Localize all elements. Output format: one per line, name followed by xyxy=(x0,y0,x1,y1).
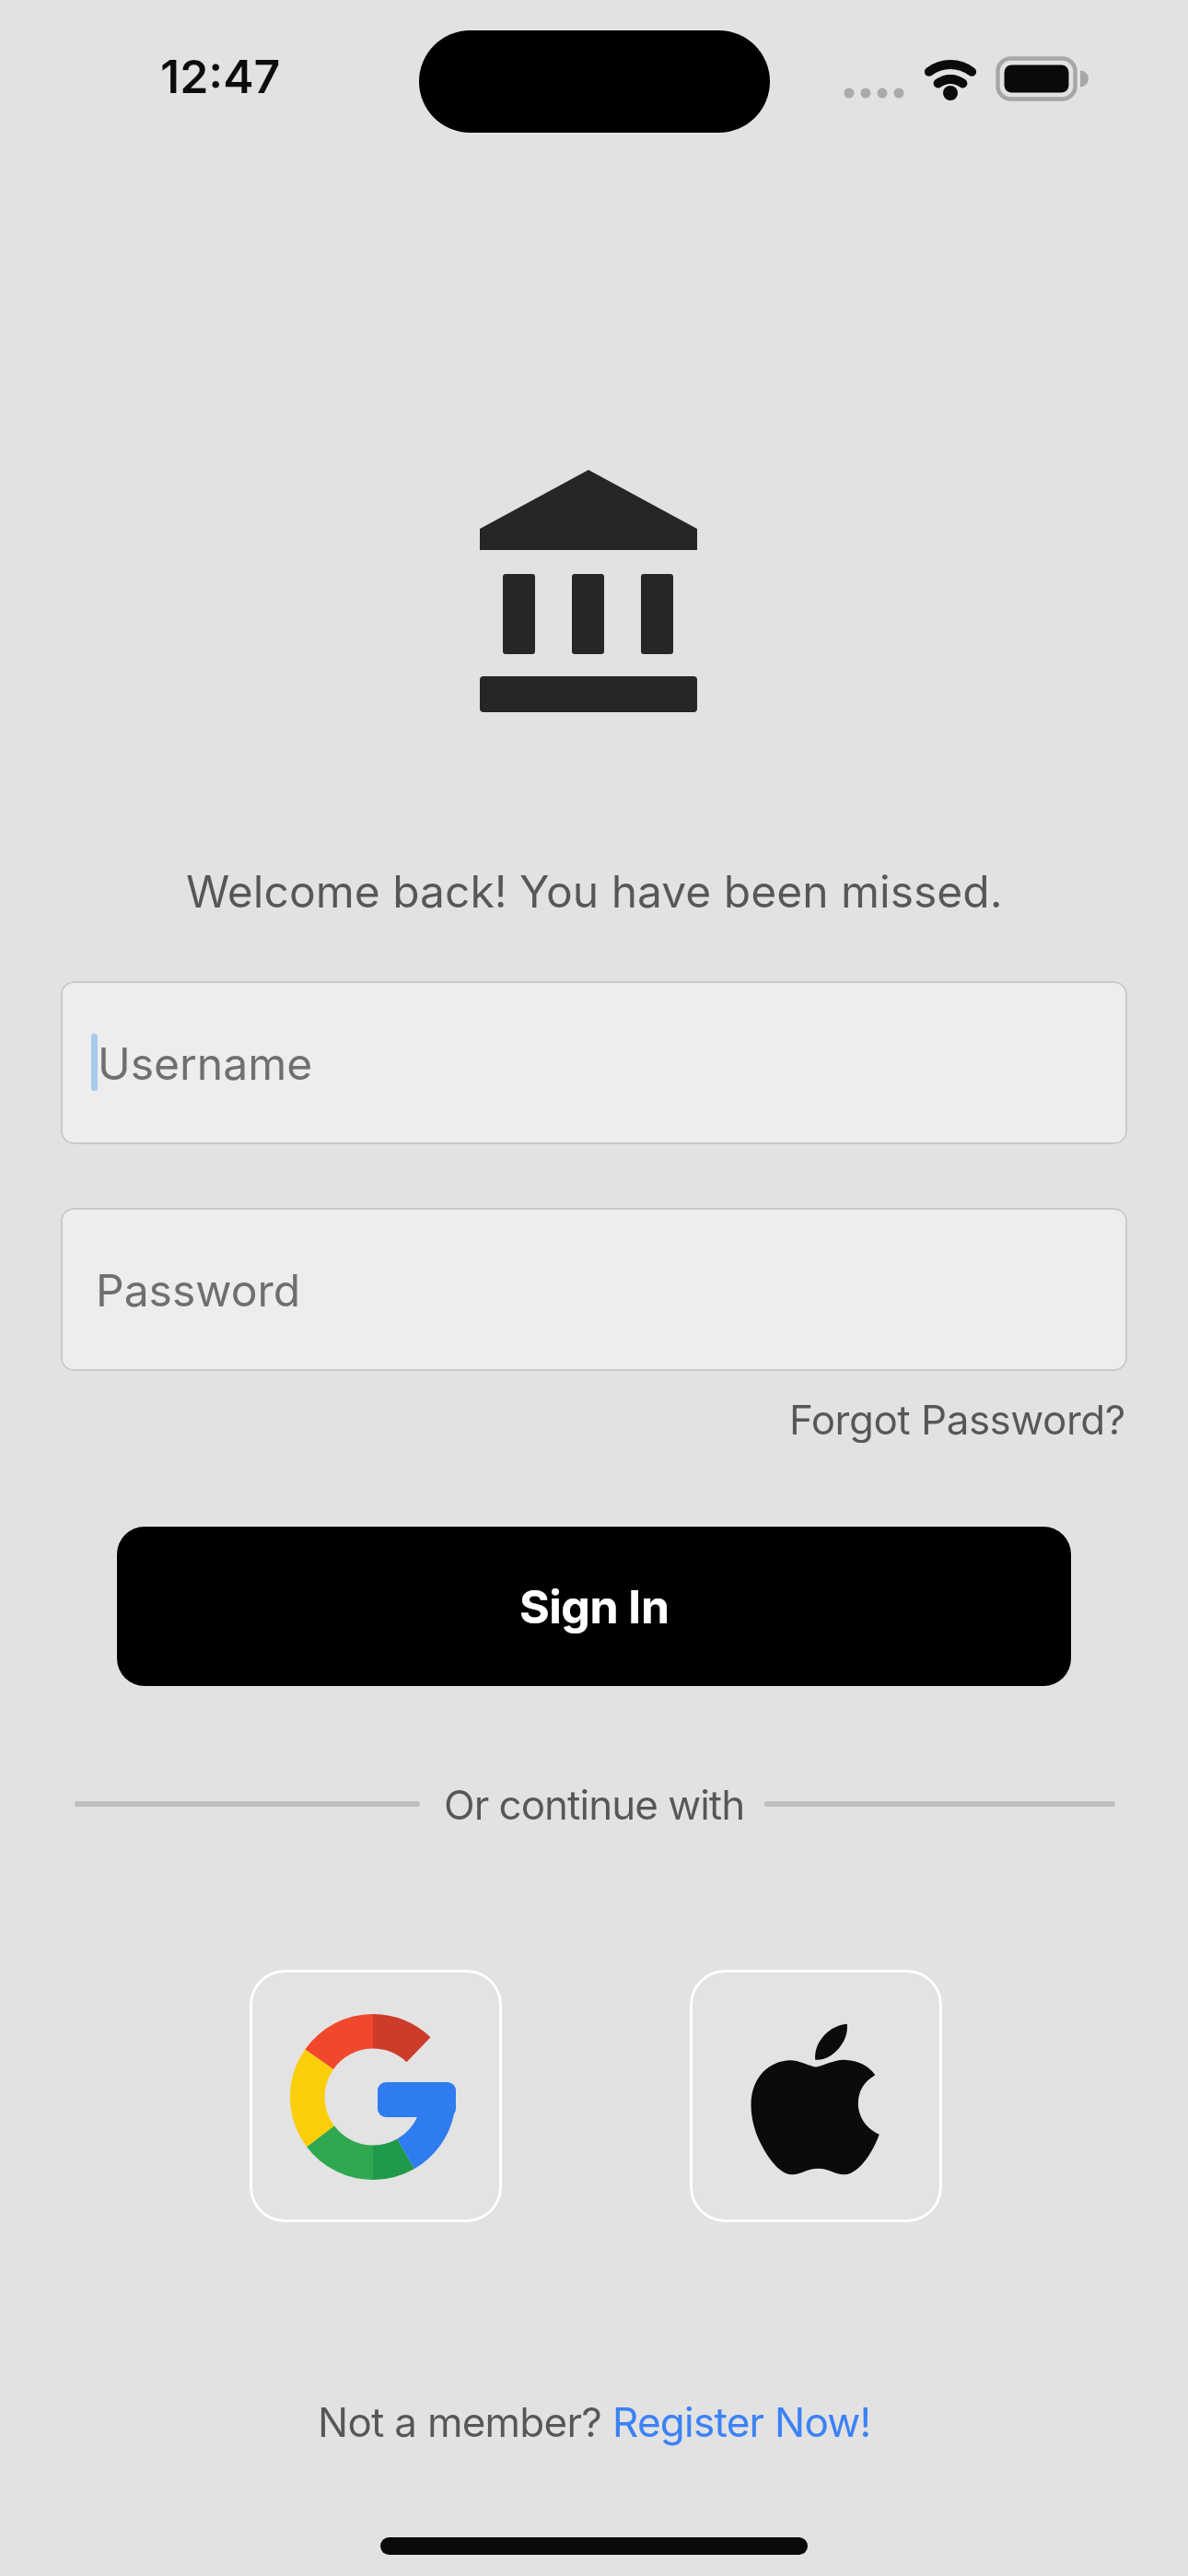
staticText: Welcome back! You have been missed. xyxy=(186,864,1003,918)
button[interactable]: Password xyxy=(61,1208,1127,1371)
button[interactable] xyxy=(250,1970,502,2222)
staticText: Username xyxy=(98,1036,313,1090)
staticText: 12:47 xyxy=(160,49,281,104)
button[interactable]: Sign In xyxy=(117,1527,1071,1686)
button[interactable]: Username xyxy=(61,981,1127,1144)
staticText: Password xyxy=(96,1263,301,1317)
button[interactable]: Forgot Password? xyxy=(789,1395,1125,1443)
staticText: Not a member? xyxy=(318,2397,612,2446)
button[interactable]: Register Now! xyxy=(612,2397,871,2446)
staticText: Sign In xyxy=(519,1579,670,1634)
button[interactable] xyxy=(690,1970,942,2222)
staticText: Or continue with xyxy=(444,1780,745,1828)
